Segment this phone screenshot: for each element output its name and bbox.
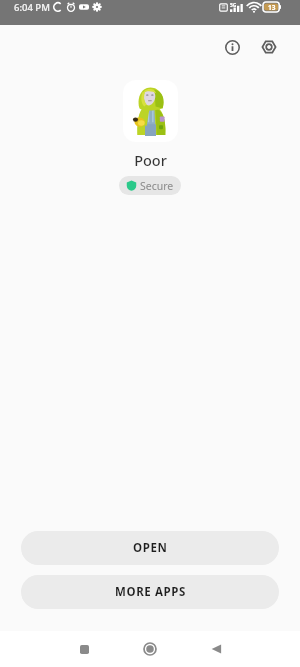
button[interactable]: Back (199, 632, 233, 666)
staticText: 5G (230, 2, 237, 9)
staticText: Secure (140, 179, 174, 193)
button[interactable]: Secure (119, 176, 181, 195)
button[interactable]: Recents (67, 632, 101, 666)
staticText: 13 (268, 3, 276, 12)
staticText: Poor (134, 150, 167, 170)
staticText: OPEN (133, 540, 168, 556)
button[interactable]: Settings (253, 31, 285, 63)
staticText: MORE APPS (115, 584, 186, 600)
button[interactable]: MORE APPS (21, 575, 279, 609)
staticText: 6:04 PM (14, 1, 50, 14)
button[interactable]: Info (216, 31, 248, 63)
button[interactable]: Home (133, 632, 167, 666)
button[interactable]: OPEN (21, 531, 279, 565)
